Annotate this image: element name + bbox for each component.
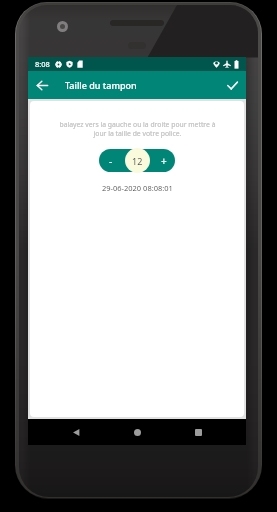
button[interactable]: Diminuer (99, 149, 122, 172)
button[interactable]: Retour (28, 71, 56, 99)
button[interactable]: Accueil (124, 419, 150, 445)
button[interactable]: Applications récentes (185, 419, 211, 445)
staticText: Taille du tampon (65, 79, 137, 91)
button[interactable]: Valider (218, 71, 246, 99)
button[interactable]: Augmenter (152, 149, 175, 172)
button[interactable]: 12 (125, 148, 150, 173)
staticText: + (161, 154, 167, 168)
staticText: 12 (132, 155, 143, 167)
staticText: - (109, 154, 113, 168)
button[interactable]: Retour (63, 419, 89, 445)
staticText: 29-06-2020 08:08:01 (102, 183, 173, 193)
staticText: 8:08 (35, 59, 50, 69)
staticText: balayez vers la gauche ou la droite pour… (59, 120, 216, 138)
